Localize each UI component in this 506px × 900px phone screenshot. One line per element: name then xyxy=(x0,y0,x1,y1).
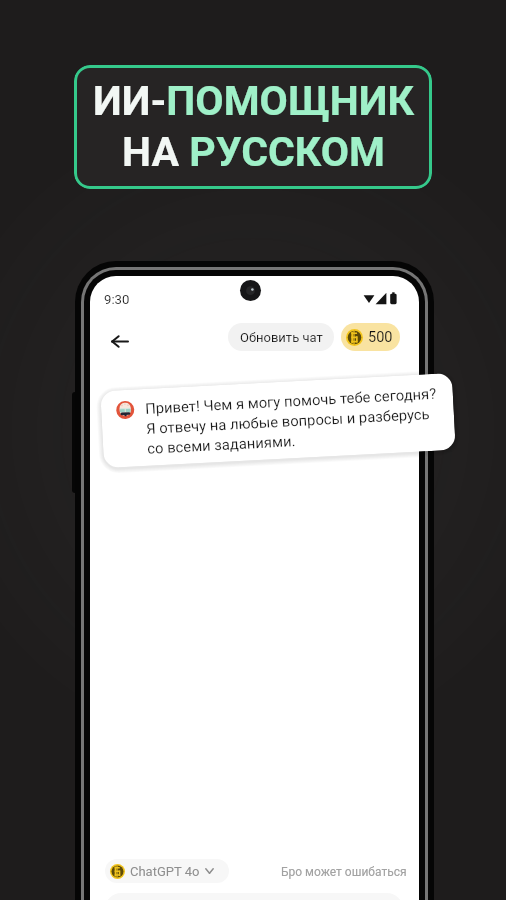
button[interactable]: Обновить чат xyxy=(228,323,334,351)
staticText: Бро может ошибаться xyxy=(281,865,407,879)
button[interactable]: Назад xyxy=(101,323,137,359)
staticText: 9:30 xyxy=(104,292,130,307)
button[interactable]: ChatGPT 4o xyxy=(105,859,229,883)
staticText: ИИ-ПОМОЩНИК xyxy=(93,77,414,125)
staticText: Привет! Чем я могу помочь тебе сегодня? … xyxy=(145,385,439,457)
staticText: ChatGPT 4o xyxy=(130,864,200,879)
button[interactable]: 500 xyxy=(341,323,400,351)
staticText: НА РУССКОМ xyxy=(122,128,385,176)
staticText: Обновить чат xyxy=(240,330,323,345)
staticText: 500 xyxy=(368,329,393,346)
